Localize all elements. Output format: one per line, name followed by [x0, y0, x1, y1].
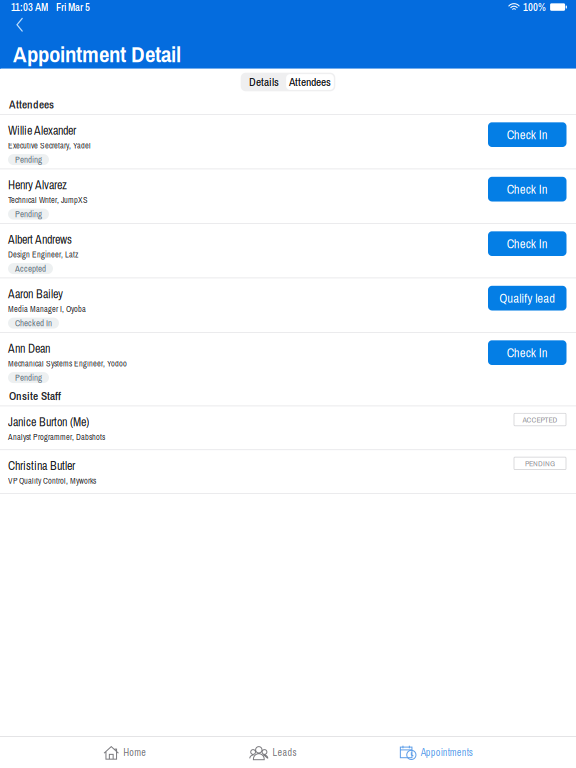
staticText: 11:03 AM — [11, 0, 48, 14]
staticText: PENDING — [525, 458, 555, 469]
staticText: Pending — [15, 372, 42, 384]
button[interactable]: Qualify lead — [488, 286, 566, 310]
staticText: Check In — [507, 344, 548, 361]
staticText: Home — [123, 746, 146, 759]
staticText: Media Manager I, Oyoba — [8, 303, 86, 315]
staticText: Mechanical Systems Engineer, Yodoo — [8, 358, 127, 369]
staticText: Attendees — [289, 74, 331, 90]
staticText: Analyst Programmer, Dabshots — [8, 431, 105, 443]
staticText: ACCEPTED — [522, 414, 557, 425]
button[interactable]: Check In — [488, 231, 566, 256]
staticText: Pending — [15, 154, 42, 166]
staticText: Willie Alexander — [8, 122, 76, 138]
staticText: Fri Mar 5 — [56, 0, 90, 14]
staticText: Technical Writer, JumpXS — [8, 194, 88, 206]
staticText: Check In — [507, 181, 548, 198]
staticText: Checked In — [15, 317, 52, 329]
staticText: Janice Burton (Me) — [8, 414, 89, 430]
button[interactable]: Check In — [488, 177, 566, 201]
staticText: Onsite Staff — [9, 388, 61, 404]
staticText: Accepted — [15, 263, 46, 275]
staticText: Details — [249, 74, 279, 90]
staticText: Albert Andrews — [8, 231, 72, 247]
button[interactable]: Leads — [249, 737, 296, 768]
staticText: Ann Dean — [8, 340, 50, 356]
staticText: Executive Secretary, Yadel — [8, 140, 91, 151]
staticText: Christina Butler — [8, 458, 75, 474]
button[interactable]: Appointments — [400, 737, 473, 768]
button[interactable]: Attendees — [286, 74, 334, 90]
staticText: Aaron Bailey — [8, 286, 63, 302]
staticText: VP Quality Control, Myworks — [8, 475, 96, 486]
button[interactable]: Back — [0, 11, 36, 39]
button[interactable]: Home — [103, 737, 146, 768]
staticText: Appointments — [421, 746, 473, 759]
button[interactable]: Check In — [488, 340, 566, 365]
staticText: Leads — [272, 746, 296, 759]
staticText: Check In — [507, 126, 548, 143]
staticText: Pending — [15, 208, 42, 220]
button[interactable]: Check In — [488, 122, 566, 147]
staticText: Henry Alvarez — [8, 177, 67, 193]
staticText: Qualify lead — [499, 290, 555, 307]
staticText: Appointment Detail — [13, 39, 181, 69]
staticText: Attendees — [9, 97, 54, 112]
staticText: Design Engineer, Latz — [8, 249, 78, 260]
staticText: Check In — [507, 235, 548, 252]
button[interactable]: Details — [242, 75, 286, 88]
staticText: 100% — [523, 0, 546, 14]
